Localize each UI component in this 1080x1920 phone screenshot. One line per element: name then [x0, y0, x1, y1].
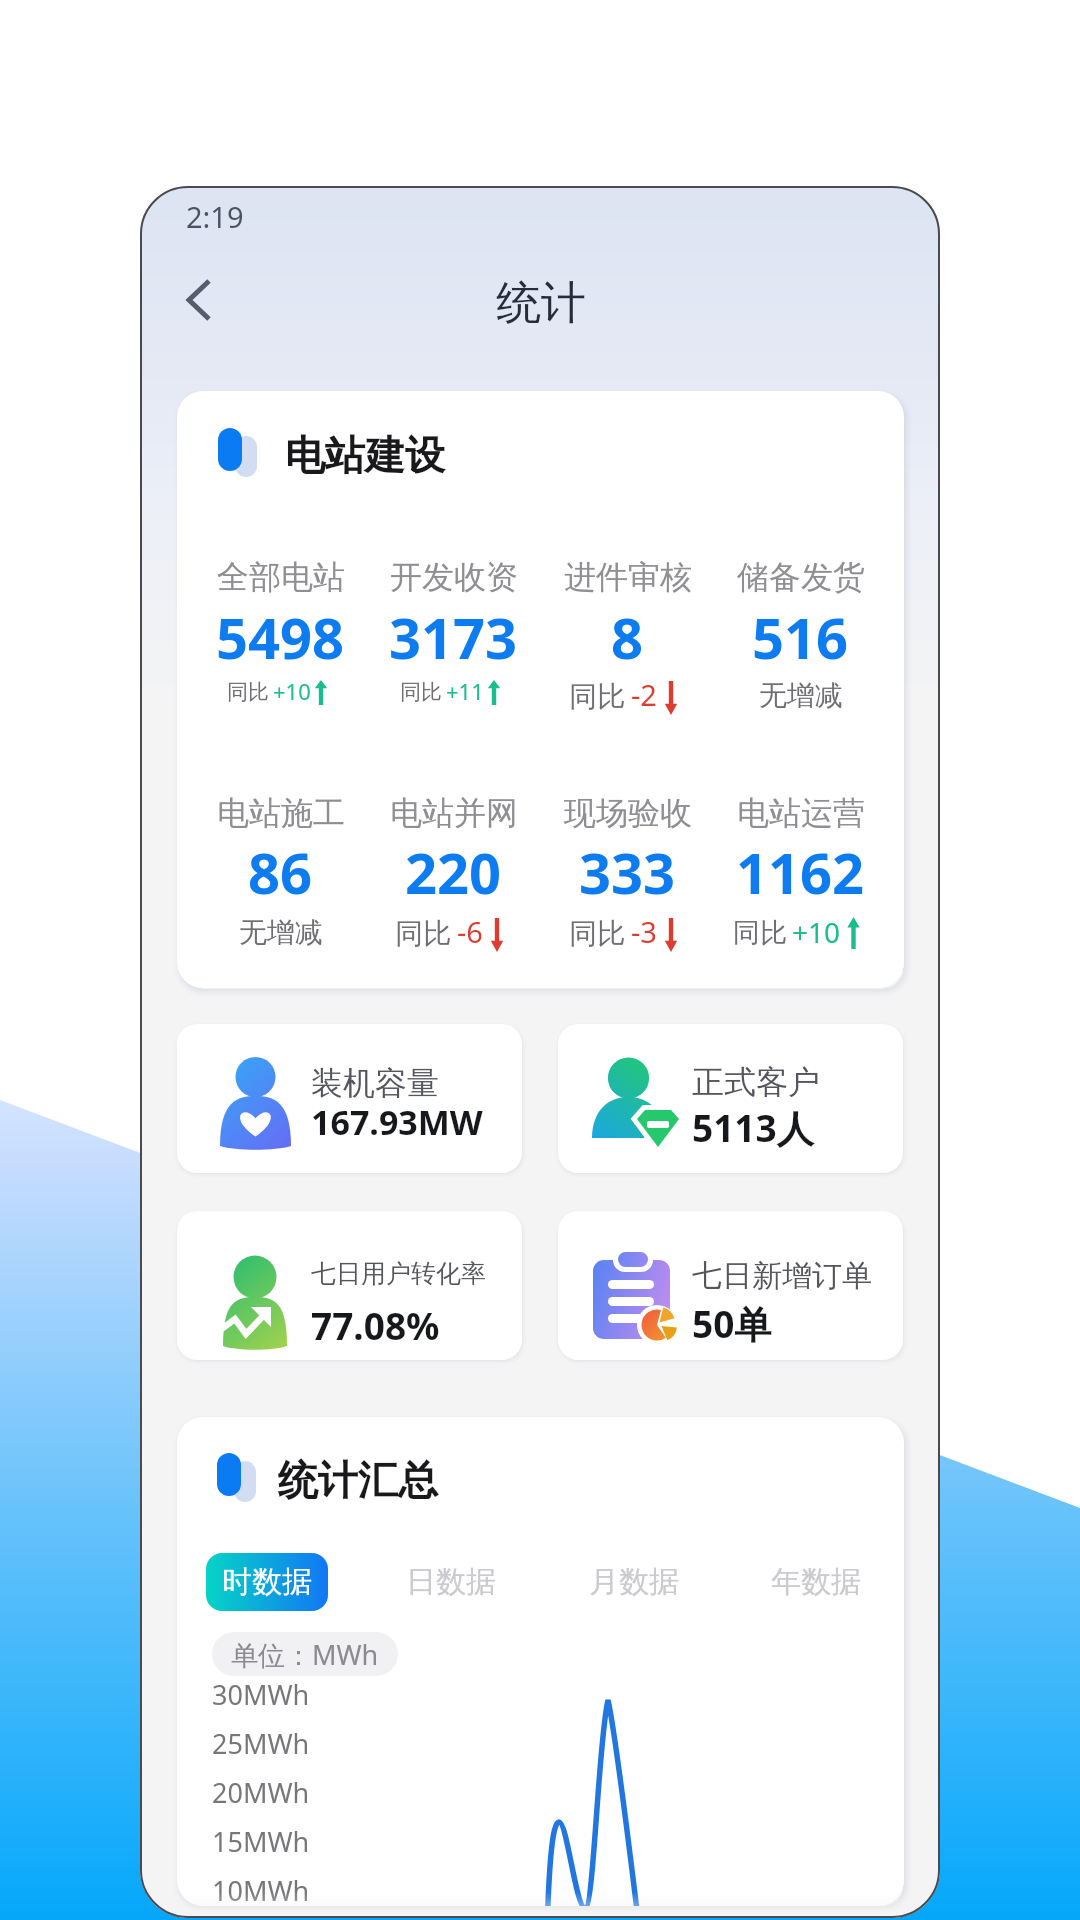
staticText: 开发收资 — [390, 557, 518, 597]
staticText: -2 — [631, 675, 657, 714]
button[interactable]: 日数据 — [395, 1553, 507, 1611]
staticText: 年数据 — [771, 1563, 861, 1601]
staticText: 20MWh — [212, 1774, 310, 1811]
staticText: 167.93MW — [311, 1099, 483, 1145]
staticText: 同比 — [400, 679, 442, 705]
staticText: 无增减 — [759, 678, 843, 713]
staticText: 25MWh — [212, 1725, 310, 1762]
staticText: 5113人 — [692, 1102, 814, 1153]
staticText: 进件审核 — [564, 557, 692, 597]
staticText: 七日用户转化率 — [311, 1258, 486, 1289]
staticText: 2:19 — [186, 197, 244, 236]
staticText: 5498 — [216, 599, 345, 675]
button[interactable] — [558, 1211, 903, 1360]
button[interactable]: 时数据 — [206, 1553, 328, 1611]
staticText: -3 — [631, 912, 657, 951]
staticText: 电站运营 — [737, 793, 865, 833]
staticText: 全部电站 — [217, 557, 345, 597]
staticText: 30MWh — [212, 1676, 310, 1713]
staticText: -6 — [457, 912, 483, 951]
staticText: 15MWh — [212, 1823, 310, 1860]
staticText: 3173 — [389, 599, 518, 675]
staticText: 同比 — [395, 916, 451, 951]
staticText: 333 — [579, 834, 676, 910]
staticText: 同比 — [227, 679, 269, 705]
staticText: 无增减 — [239, 915, 323, 950]
staticText: 同比 — [733, 916, 787, 950]
button[interactable] — [177, 1024, 522, 1173]
staticText: 10MWh — [212, 1872, 310, 1909]
staticText: 单位：MWh — [231, 1636, 379, 1673]
staticText: 装机容量 — [311, 1063, 439, 1103]
staticText: 77.08% — [311, 1300, 440, 1350]
staticText: 同比 — [569, 679, 625, 714]
staticText: 516 — [752, 599, 849, 675]
staticText: 电站并网 — [390, 793, 518, 833]
button[interactable]: 月数据 — [578, 1553, 690, 1611]
staticText: 86 — [248, 834, 313, 910]
staticText: 时数据 — [222, 1563, 312, 1601]
staticText: 同比 — [569, 916, 625, 951]
staticText: 8 — [611, 599, 644, 675]
staticText: 七日新增订单 — [692, 1257, 872, 1295]
staticText: +10 — [792, 913, 841, 951]
staticText: 储备发货 — [737, 557, 865, 597]
staticText: 50单 — [692, 1298, 772, 1349]
staticText: 现场验收 — [564, 793, 692, 833]
staticText: +11 — [446, 676, 484, 706]
staticText: +10 — [273, 676, 311, 706]
staticText: 电站建设 — [285, 430, 445, 480]
button[interactable]: 年数据 — [760, 1553, 872, 1611]
button[interactable] — [558, 1024, 903, 1173]
staticText: 统计汇总 — [278, 1455, 438, 1505]
button[interactable] — [177, 1211, 522, 1360]
staticText: 220 — [405, 834, 502, 910]
staticText: 正式客户 — [692, 1062, 820, 1102]
staticText: 统计 — [496, 275, 586, 332]
staticText: 月数据 — [589, 1563, 679, 1601]
staticText: 日数据 — [406, 1563, 496, 1601]
button[interactable]: Back — [174, 270, 234, 330]
staticText: 电站施工 — [217, 793, 345, 833]
staticText: 1162 — [736, 834, 865, 910]
